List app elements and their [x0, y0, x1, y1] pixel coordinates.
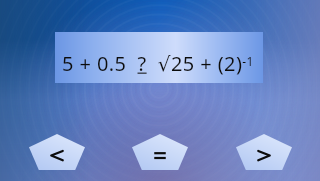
button[interactable]: Equals [132, 134, 188, 170]
button[interactable]: Less than [29, 134, 85, 170]
button[interactable]: 5 + 0.5 ? √25 + (2)-1 [55, 32, 263, 83]
button[interactable]: Greater than [236, 134, 292, 170]
staticText: 5 + 0.5 ? √25 + (2)-1 [62, 50, 254, 77]
